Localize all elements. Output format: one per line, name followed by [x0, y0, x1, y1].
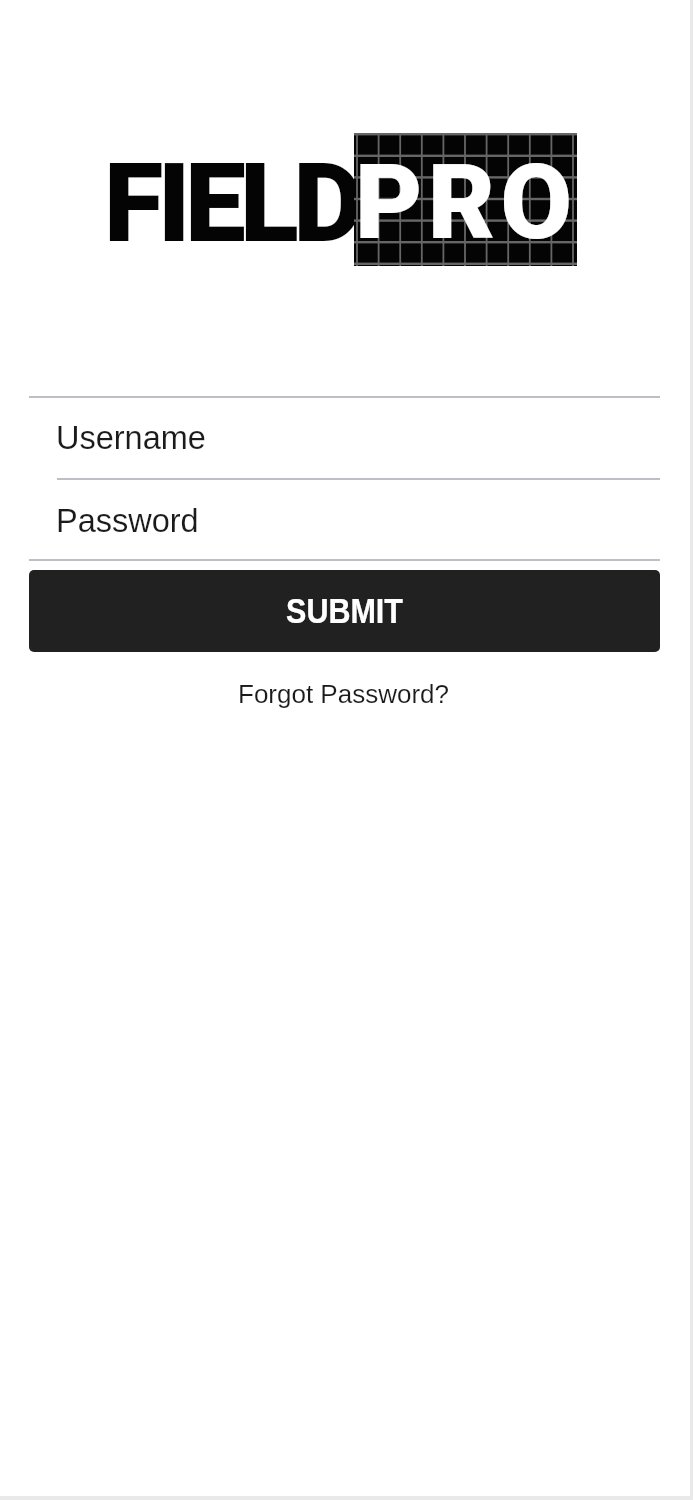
staticText: PRO: [355, 142, 578, 263]
staticText: Forgot Password?: [238, 679, 449, 708]
staticText: SUBMIT: [286, 592, 403, 631]
button[interactable]: Username: [29, 398, 660, 478]
button[interactable]: Password: [29, 480, 660, 559]
staticText: Password: [56, 503, 199, 539]
staticText: Username: [56, 420, 206, 456]
staticText: FIELD: [104, 140, 358, 267]
button[interactable]: SUBMIT: [29, 570, 660, 652]
button[interactable]: Forgot Password?: [228, 676, 458, 710]
